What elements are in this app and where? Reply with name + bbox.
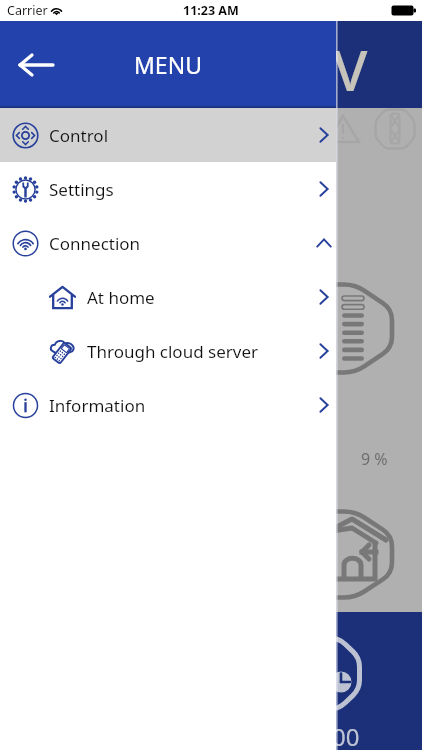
staticText: Connection — [49, 232, 141, 255]
staticText: Settings — [49, 178, 114, 201]
staticText: Information — [49, 394, 146, 417]
staticText: 9 % — [361, 448, 388, 470]
button[interactable]: Back — [10, 39, 62, 91]
button[interactable]: Settings — [0, 162, 336, 216]
staticText: Through cloud server — [87, 340, 259, 363]
staticText: Carrier — [7, 2, 48, 19]
staticText: 00 — [332, 720, 360, 750]
staticText: V — [333, 31, 368, 107]
button[interactable]: Connection — [0, 216, 336, 270]
staticText: 11:23 AM — [183, 2, 239, 19]
staticText: MENU — [134, 49, 202, 80]
button[interactable]: Through cloud server — [0, 324, 336, 378]
button[interactable]: Control — [0, 108, 336, 162]
button[interactable]: Information — [0, 378, 336, 432]
button[interactable]: At home — [0, 270, 336, 324]
staticText: At home — [87, 286, 155, 309]
staticText: Control — [49, 124, 109, 147]
